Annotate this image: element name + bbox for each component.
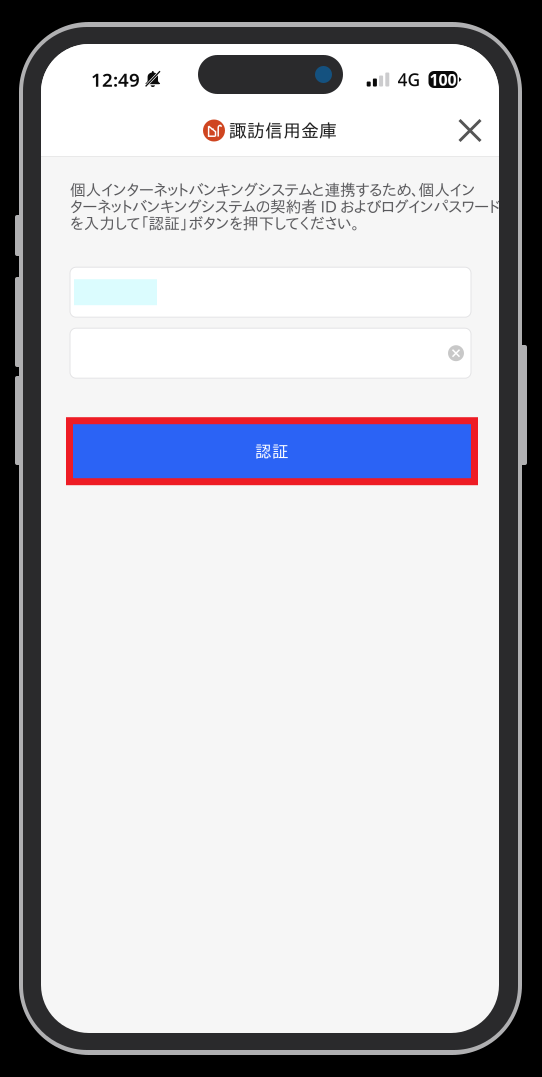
staticText: 個人インターネットバンキングシステムと連携するため、個人イン ターネットバンキン… — [70, 182, 501, 231]
button[interactable]: Clear text — [448, 345, 464, 361]
button[interactable]: 認証 — [73, 424, 471, 478]
staticText: 4G — [397, 68, 420, 91]
staticText: 諏訪信用金庫 — [229, 121, 337, 139]
staticText: 12:49 — [91, 67, 140, 92]
button[interactable]: Close — [448, 108, 492, 152]
staticText: 100 — [429, 69, 456, 90]
staticText: 認証 — [255, 443, 289, 459]
